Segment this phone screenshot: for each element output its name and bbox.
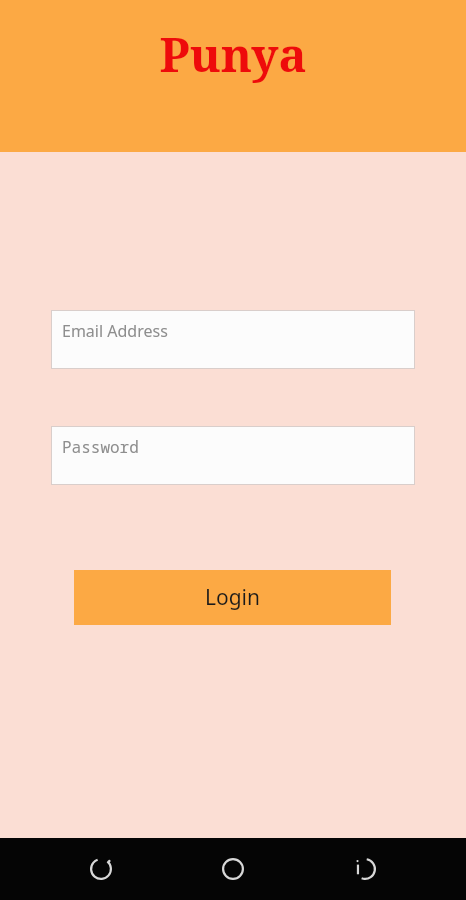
- button[interactable]: Login: [74, 570, 391, 625]
- staticText: Email Address: [62, 320, 168, 342]
- button[interactable]: Password: [51, 426, 415, 485]
- button[interactable]: Recent apps: [70, 838, 132, 900]
- staticText: Login: [205, 583, 261, 612]
- staticText: Password: [62, 436, 139, 458]
- button[interactable]: Email Address: [51, 310, 415, 369]
- button[interactable]: Back: [334, 838, 396, 900]
- staticText: Punya: [159, 22, 307, 86]
- button[interactable]: Home: [202, 838, 264, 900]
